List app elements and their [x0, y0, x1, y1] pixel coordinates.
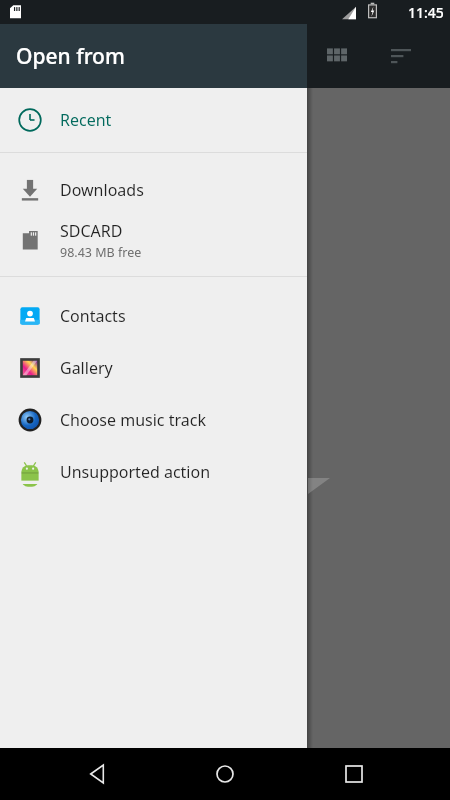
button[interactable]: Choose music track [0, 394, 307, 446]
button[interactable]: Recents [322, 748, 386, 800]
staticText: 11:45 [408, 3, 444, 22]
staticText: 98.43 MB free [60, 244, 142, 261]
button[interactable]: Back [65, 748, 129, 800]
staticText: SDCARD [60, 220, 123, 242]
button[interactable]: Gallery [0, 342, 307, 394]
staticText: Recent [60, 109, 112, 131]
button[interactable]: Grid view [315, 34, 359, 78]
button[interactable]: Unsupported action [0, 446, 307, 498]
button[interactable]: Home [193, 748, 257, 800]
staticText: Gallery [60, 357, 113, 379]
button[interactable]: Sort [379, 34, 423, 78]
button[interactable]: Downloads [0, 166, 307, 213]
button[interactable]: SDCARD [0, 213, 307, 267]
staticText: Downloads [60, 179, 144, 201]
button[interactable]: Contacts [0, 290, 307, 342]
staticText: Open from [16, 42, 125, 71]
staticText: Unsupported action [60, 461, 211, 483]
button[interactable]: Recent [0, 96, 307, 143]
staticText: Contacts [60, 305, 126, 327]
staticText: Choose music track [60, 409, 206, 431]
